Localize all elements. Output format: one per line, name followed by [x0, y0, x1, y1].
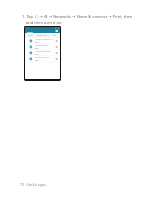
button[interactable]: Office WLAN: [25, 44, 60, 50]
staticText: and then turn it on.: [26, 20, 63, 25]
staticText: Printer direct: [35, 56, 50, 59]
button[interactable]: Printer direct: [25, 56, 60, 62]
other: Wi-Fi on off switch: [55, 30, 58, 32]
staticText: 72: [20, 182, 25, 187]
staticText: Useful apps: [26, 182, 46, 187]
button[interactable]: Guest network: [25, 50, 60, 56]
staticText: 1. Tap ○ → ⚙ → Networks → Share & connec…: [22, 14, 133, 19]
button[interactable]: Bluetooth: [36, 33, 48, 38]
button[interactable]: Home network 2: [25, 38, 60, 44]
staticText: Office WLAN: [35, 44, 49, 47]
staticText: ON: [35, 53, 39, 56]
staticText: ON: [35, 41, 39, 44]
staticText: Home network 2: [35, 38, 53, 41]
staticText: NFC: [52, 34, 57, 37]
staticText: ON: [35, 47, 39, 50]
staticText: Guest network: [35, 50, 51, 53]
staticText: ON: [35, 59, 39, 62]
staticText: Wi‑Fi: [27, 30, 33, 33]
staticText: Wi-Fi: [28, 34, 34, 37]
button[interactable]: Wi‑Fi: [25, 29, 60, 33]
staticText: Bluetooth: [37, 34, 48, 37]
button[interactable]: Wi-Fi: [25, 33, 36, 38]
button[interactable]: NFC: [48, 33, 60, 38]
